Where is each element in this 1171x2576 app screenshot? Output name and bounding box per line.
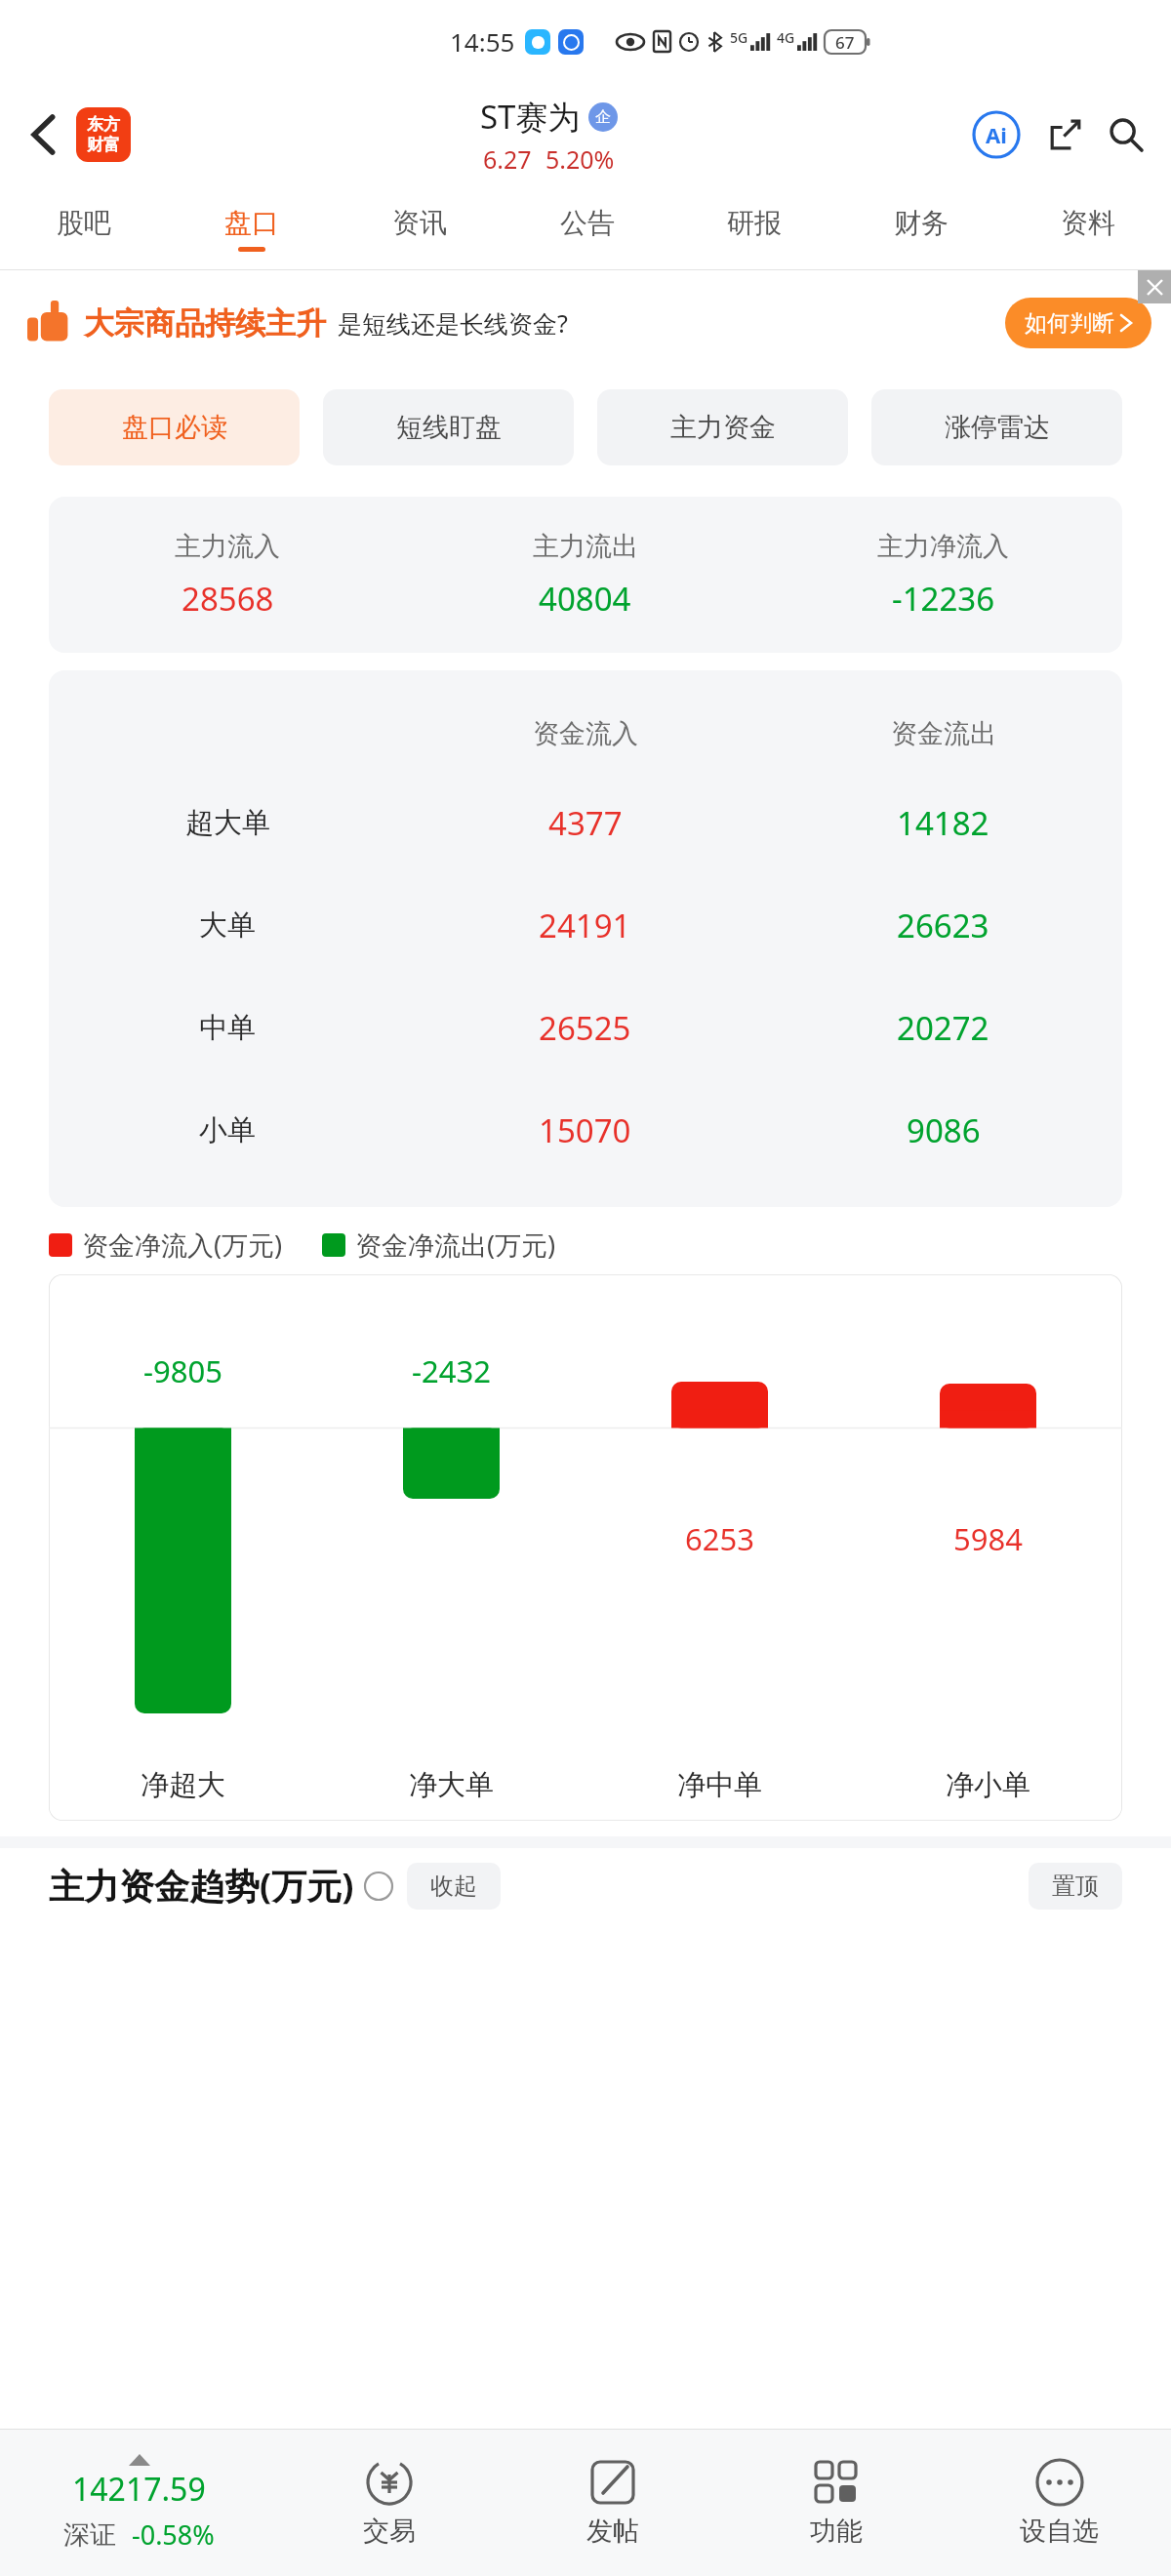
staticText: -9805 bbox=[143, 1350, 222, 1391]
button[interactable]: 如何判断 bbox=[1025, 298, 1132, 348]
button[interactable]: Share bbox=[1040, 109, 1091, 160]
staticText: -12236 bbox=[892, 577, 995, 621]
staticText: 股吧 bbox=[57, 206, 111, 240]
staticText: 资金流出 bbox=[891, 717, 996, 750]
button[interactable]: 盘口必读 bbox=[49, 389, 300, 465]
staticText: 超大单 bbox=[185, 805, 270, 841]
staticText: 净小单 bbox=[946, 1767, 1030, 1803]
staticText: 67 bbox=[835, 31, 855, 54]
staticText: 14182 bbox=[897, 801, 989, 845]
button[interactable]: 资料 bbox=[1004, 187, 1171, 269]
button[interactable]: 盘口 bbox=[168, 187, 336, 269]
staticText: 企 bbox=[595, 107, 611, 127]
button[interactable]: 大单 bbox=[49, 874, 1122, 977]
staticText: 大宗商品持续主升 bbox=[84, 304, 326, 342]
staticText: 15070 bbox=[539, 1108, 631, 1152]
staticText: 资讯 bbox=[392, 206, 447, 240]
staticText: 26525 bbox=[539, 1006, 631, 1050]
button[interactable]: 小单 bbox=[49, 1079, 1122, 1182]
staticText: 资金净流入(万元) bbox=[82, 1227, 283, 1263]
staticText: 4377 bbox=[548, 801, 623, 845]
staticText: 财务 bbox=[894, 206, 949, 240]
staticText: 40804 bbox=[539, 577, 631, 621]
button[interactable]: Search bbox=[1101, 109, 1151, 160]
staticText: ST赛为 bbox=[480, 95, 581, 139]
staticText: 功能 bbox=[810, 2515, 863, 2548]
button[interactable]: 交易 bbox=[278, 2458, 501, 2548]
staticText: 是短线还是长线资金? bbox=[338, 306, 568, 340]
staticText: 主力净流入 bbox=[877, 530, 1009, 563]
staticText: 24191 bbox=[539, 904, 631, 947]
button[interactable]: 功能 bbox=[724, 2458, 948, 2548]
button[interactable]: Close bbox=[1138, 270, 1171, 303]
staticText: 大单 bbox=[199, 907, 256, 944]
staticText: 财富 bbox=[87, 135, 120, 155]
staticText: 中单 bbox=[199, 1010, 256, 1046]
staticText: -2432 bbox=[412, 1350, 491, 1391]
staticText: 东方 bbox=[87, 114, 120, 135]
staticText: 设自选 bbox=[1020, 2515, 1099, 2548]
staticText: 6253 bbox=[685, 1518, 754, 1559]
staticText: 28568 bbox=[182, 577, 274, 621]
button[interactable]: -9805 bbox=[49, 1274, 1122, 1821]
button[interactable]: 主力流入 bbox=[49, 497, 1122, 653]
staticText: 主力资金 bbox=[670, 411, 776, 444]
staticText: 公告 bbox=[560, 206, 615, 240]
staticText: 主力流出 bbox=[533, 530, 638, 563]
staticText: 14:55 bbox=[450, 24, 515, 59]
staticText: 5984 bbox=[953, 1518, 1023, 1559]
staticText: 主力资金趋势(万元) bbox=[49, 1862, 354, 1910]
button[interactable]: 超大单 bbox=[49, 772, 1122, 874]
staticText: 5.20% bbox=[545, 142, 615, 176]
staticText: -0.58% bbox=[132, 2516, 215, 2553]
staticText: 净中单 bbox=[677, 1767, 762, 1803]
staticText: 9086 bbox=[907, 1108, 981, 1152]
button[interactable]: 发帖 bbox=[501, 2458, 724, 2548]
staticText: 小单 bbox=[199, 1112, 256, 1148]
staticText: 资金流入 bbox=[533, 717, 638, 750]
staticText: 盘口必读 bbox=[122, 411, 227, 444]
staticText: 短线盯盘 bbox=[396, 411, 502, 444]
staticText: 如何判断 bbox=[1025, 309, 1114, 338]
staticText: 涨停雷达 bbox=[945, 411, 1050, 444]
button[interactable]: 14217.59 bbox=[0, 2454, 278, 2553]
staticText: 资料 bbox=[1061, 206, 1115, 240]
staticText: 4G bbox=[777, 28, 795, 47]
staticText: 收起 bbox=[430, 1872, 477, 1901]
staticText: 资金净流出(万元) bbox=[355, 1227, 556, 1263]
staticText: 发帖 bbox=[586, 2515, 639, 2548]
staticText: Ai bbox=[986, 120, 1007, 149]
button[interactable]: 中单 bbox=[49, 977, 1122, 1079]
staticText: 5G bbox=[730, 28, 748, 47]
button[interactable]: 财务 bbox=[837, 187, 1004, 269]
button[interactable]: 置顶 bbox=[1029, 1863, 1122, 1910]
staticText: 净超大 bbox=[141, 1767, 225, 1803]
button[interactable]: 股吧 bbox=[0, 187, 168, 269]
button[interactable]: 短线盯盘 bbox=[323, 389, 574, 465]
button[interactable]: 收起 bbox=[407, 1863, 501, 1910]
staticText: 研报 bbox=[727, 206, 782, 240]
button[interactable]: 主力资金 bbox=[597, 389, 848, 465]
staticText: 14217.59 bbox=[72, 2468, 206, 2511]
button[interactable]: Back bbox=[20, 109, 70, 160]
staticText: 置顶 bbox=[1052, 1872, 1099, 1901]
button[interactable]: 涨停雷达 bbox=[871, 389, 1122, 465]
staticText: 盘口 bbox=[224, 206, 279, 240]
button[interactable]: 研报 bbox=[670, 187, 837, 269]
staticText: 6.27 bbox=[483, 142, 532, 176]
button[interactable]: East Money bbox=[76, 107, 131, 162]
button[interactable]: 设自选 bbox=[948, 2458, 1171, 2548]
staticText: 深证 bbox=[63, 2518, 116, 2552]
staticText: 交易 bbox=[363, 2515, 416, 2548]
staticText: 主力流入 bbox=[175, 530, 280, 563]
staticText: 净大单 bbox=[409, 1767, 494, 1803]
button[interactable]: AI bbox=[968, 106, 1025, 163]
staticText: 20272 bbox=[897, 1006, 989, 1050]
button[interactable]: 公告 bbox=[504, 187, 670, 269]
staticText: 26623 bbox=[897, 904, 989, 947]
button[interactable]: 资讯 bbox=[336, 187, 504, 269]
